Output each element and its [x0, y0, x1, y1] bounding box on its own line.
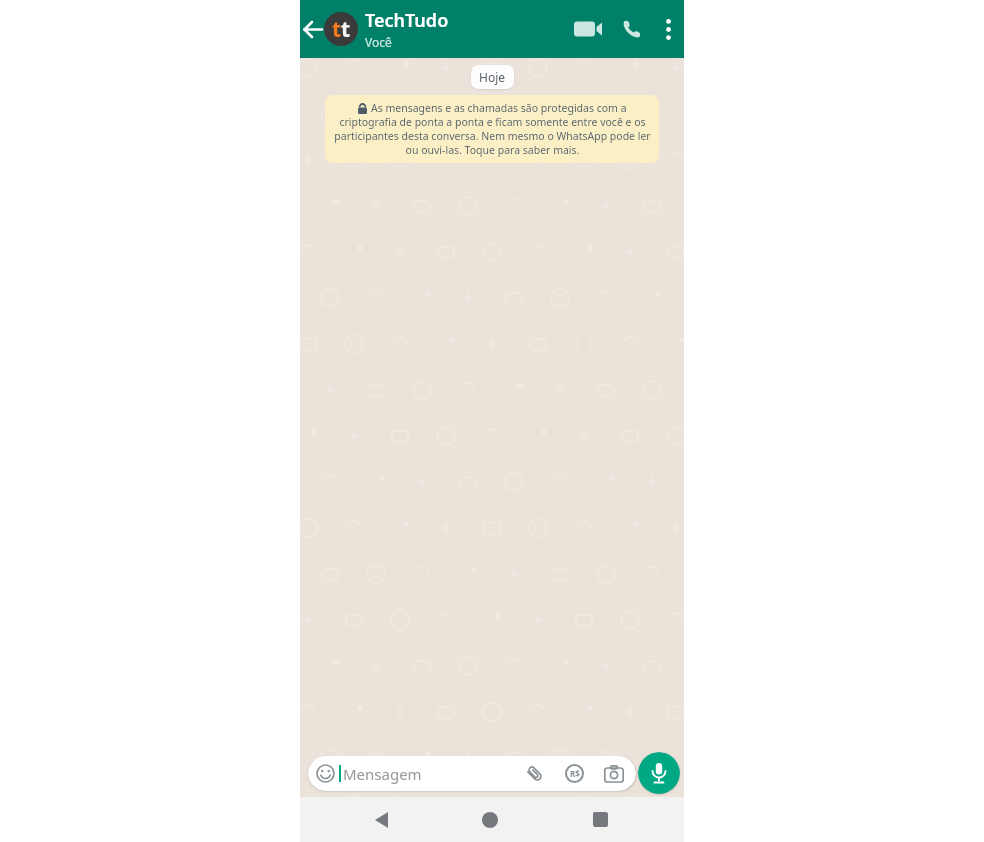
button[interactable] — [300, 0, 324, 58]
staticText: TechTudo — [365, 8, 449, 33]
staticText: Mensagem — [343, 764, 422, 784]
button[interactable]: Hoje — [471, 65, 514, 89]
staticText: As mensagens e as chamadas são protegida… — [371, 101, 627, 115]
staticText: tt — [332, 15, 351, 44]
staticText: Hoje — [479, 69, 506, 85]
button[interactable] — [373, 811, 389, 828]
button[interactable]: As mensagens e as chamadas são protegida… — [325, 95, 659, 163]
button[interactable] — [652, 0, 684, 58]
button[interactable] — [612, 0, 652, 58]
button[interactable] — [638, 752, 680, 794]
staticText: Você — [365, 34, 392, 50]
staticText: R$ — [570, 768, 580, 779]
button[interactable]: Mensagem — [308, 756, 636, 791]
button[interactable] — [482, 811, 498, 828]
button[interactable]: tt — [324, 12, 358, 46]
button[interactable]: TechTudo — [365, 8, 449, 50]
staticText: criptografia de ponta a ponta e ficam so… — [334, 115, 651, 157]
button[interactable] — [592, 811, 608, 828]
button[interactable] — [568, 0, 608, 58]
